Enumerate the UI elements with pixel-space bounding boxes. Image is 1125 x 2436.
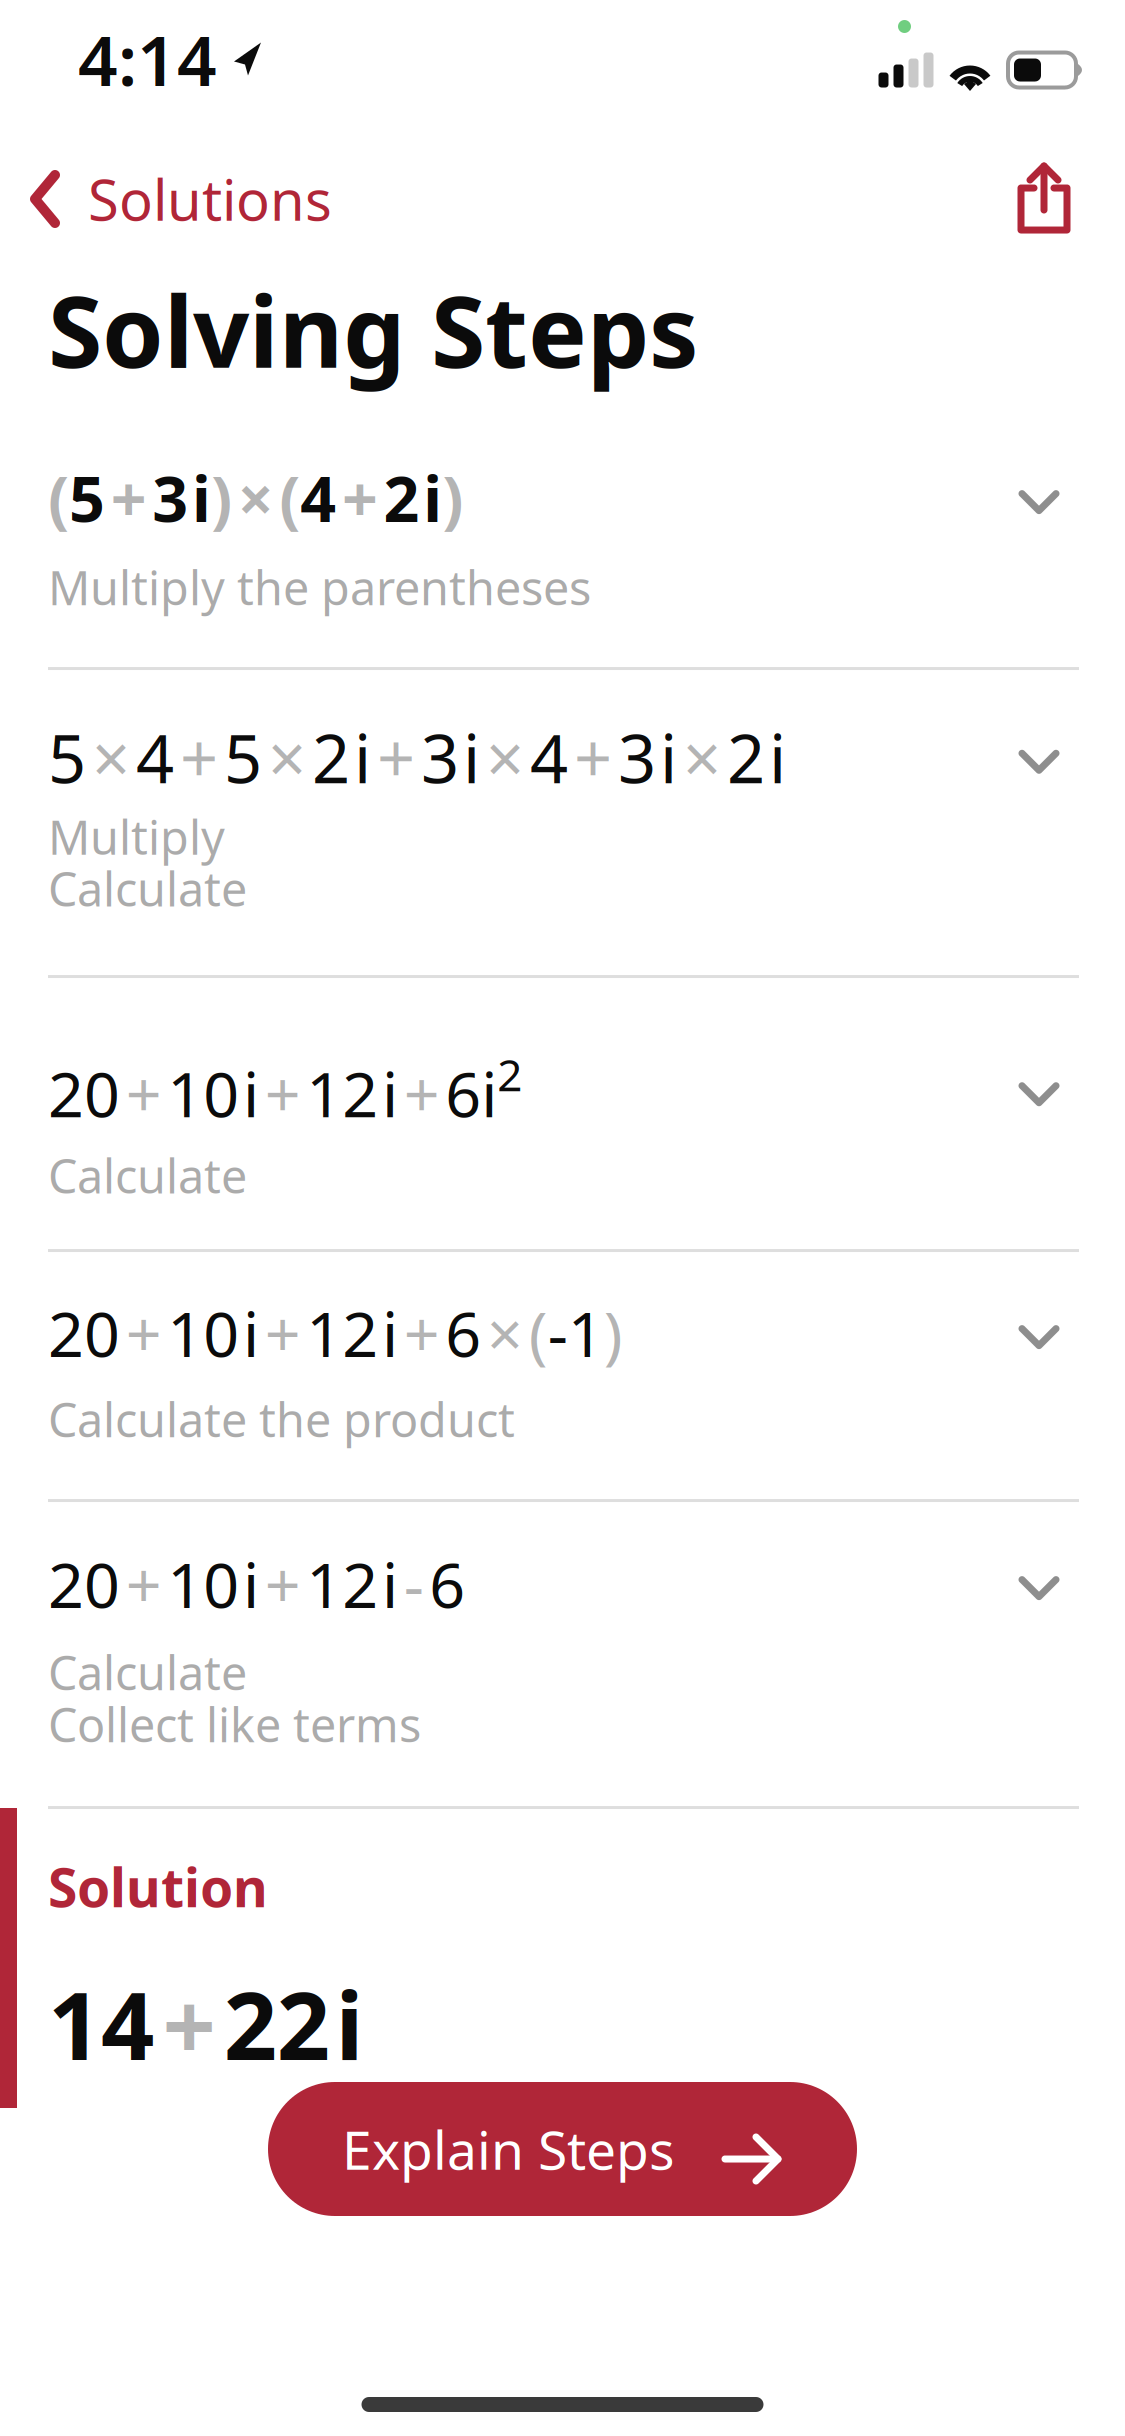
staticText: 12 <box>306 1051 378 1134</box>
staticText: 4 <box>300 456 336 539</box>
staticText: -1 <box>548 1291 604 1374</box>
staticText: 2 <box>727 713 765 801</box>
staticText: 22 <box>224 1962 330 2086</box>
staticText: + <box>574 713 612 801</box>
staticText: × <box>238 456 274 539</box>
staticText: 10 <box>167 1051 239 1134</box>
staticText: i <box>243 1542 259 1625</box>
button[interactable]: Share <box>977 117 1125 265</box>
staticText: 20 <box>48 1051 120 1134</box>
staticText: Multiply <box>48 806 225 868</box>
staticText: i2 <box>481 1045 522 1134</box>
button[interactable]: 5 <box>48 670 1079 975</box>
staticText: ( <box>48 456 69 539</box>
staticText: i <box>382 1051 398 1134</box>
staticText: - <box>404 1542 424 1625</box>
staticText: 6 <box>445 1291 481 1374</box>
staticText: i <box>423 456 442 539</box>
staticText: × <box>92 713 130 801</box>
staticText: Multiply the parentheses <box>48 556 591 618</box>
staticText: + <box>162 1962 215 2086</box>
staticText: 4:14 <box>78 13 217 105</box>
staticText: + <box>126 1291 162 1374</box>
button[interactable]: ( <box>48 423 1079 667</box>
button[interactable]: Solutions <box>0 123 332 259</box>
staticText: 3 <box>152 456 188 539</box>
staticText: + <box>342 456 378 539</box>
staticText: 3 <box>618 713 656 801</box>
staticText: ( <box>279 456 300 539</box>
staticText: ) <box>442 456 463 539</box>
staticText: 4 <box>530 713 568 801</box>
staticText: 12 <box>306 1291 378 1374</box>
staticText: + <box>265 1291 301 1374</box>
staticText: Solving Steps <box>48 264 699 395</box>
button[interactable]: 20 <box>48 1502 1079 1806</box>
staticText: 3 <box>421 713 459 801</box>
staticText: + <box>265 1051 301 1134</box>
staticText: 5 <box>224 713 262 801</box>
staticText: × <box>268 713 306 801</box>
staticText: i <box>243 1291 259 1374</box>
staticText: i <box>354 713 371 801</box>
staticText: Solution <box>48 1851 268 1922</box>
staticText: i <box>335 1962 363 2086</box>
staticText: Calculate <box>48 1641 247 1703</box>
staticText: 10 <box>167 1291 239 1374</box>
staticText: 20 <box>48 1291 120 1374</box>
staticText: 5 <box>48 713 86 801</box>
staticText: Calculate <box>48 857 247 919</box>
staticText: i <box>463 713 480 801</box>
staticText: + <box>265 1542 301 1625</box>
staticText: + <box>377 713 415 801</box>
staticText: 5 <box>69 456 105 539</box>
staticText: Calculate <box>48 1144 247 1206</box>
staticText: × <box>683 713 721 801</box>
staticText: i <box>769 713 786 801</box>
staticText: + <box>404 1051 440 1134</box>
staticText: ) <box>604 1291 623 1374</box>
staticText: i <box>382 1542 398 1625</box>
staticText: 2 <box>384 456 420 539</box>
button[interactable]: Explain Steps <box>268 2082 857 2216</box>
staticText: 12 <box>306 1542 378 1625</box>
staticText: Calculate the product <box>48 1388 515 1450</box>
staticText: × <box>487 1291 523 1374</box>
staticText: 20 <box>48 1542 120 1625</box>
staticText: 6 <box>429 1542 465 1625</box>
staticText: 2 <box>312 713 350 801</box>
staticText: 14 <box>48 1962 154 2086</box>
staticText: Solutions <box>88 162 332 236</box>
staticText: + <box>111 456 147 539</box>
staticText: i <box>192 456 211 539</box>
staticText: + <box>404 1291 440 1374</box>
staticText: Explain Steps <box>342 2114 675 2184</box>
staticText: 4 <box>136 713 174 801</box>
staticText: 6 <box>445 1051 481 1134</box>
staticText: i <box>660 713 677 801</box>
staticText: Collect like terms <box>48 1693 421 1755</box>
staticText: i <box>243 1051 259 1134</box>
button[interactable]: 20 <box>48 978 1079 1249</box>
staticText: ( <box>529 1291 548 1374</box>
staticText: 10 <box>167 1542 239 1625</box>
staticText: + <box>126 1051 162 1134</box>
staticText: i <box>382 1291 398 1374</box>
staticText: + <box>180 713 218 801</box>
staticText: + <box>126 1542 162 1625</box>
button[interactable]: 20 <box>48 1252 1079 1499</box>
staticText: × <box>486 713 524 801</box>
staticText: ) <box>211 456 232 539</box>
